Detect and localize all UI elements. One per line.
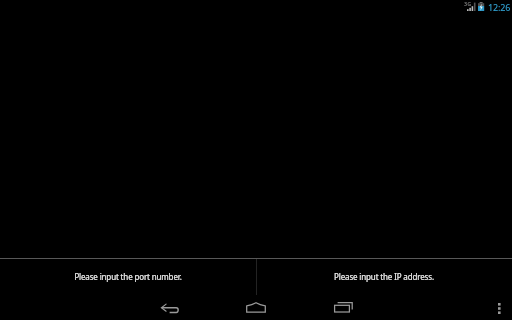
button[interactable]: Please input the port number.: [0, 259, 256, 298]
staticText: Please input the IP address.: [334, 271, 434, 282]
button[interactable]: Back: [152, 298, 188, 320]
button[interactable]: Recent apps: [325, 296, 361, 318]
staticText: 12:26: [488, 1, 511, 13]
button[interactable]: Please input the IP address.: [256, 259, 512, 298]
button[interactable]: Home: [238, 296, 274, 318]
staticText: Please input the port number.: [74, 271, 182, 282]
button[interactable]: More options: [488, 297, 510, 319]
staticText: 3G: [464, 0, 472, 7]
